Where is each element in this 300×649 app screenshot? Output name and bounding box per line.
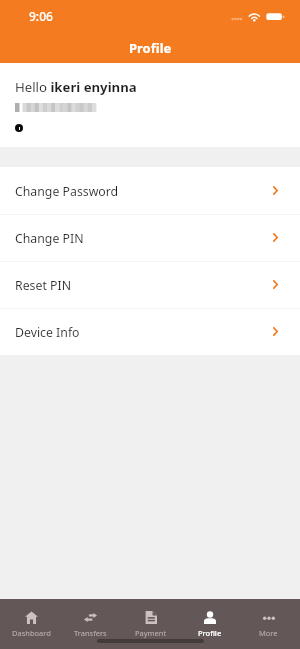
staticText: Profile: [198, 628, 222, 638]
other: More: [263, 611, 275, 624]
button[interactable]: Reset PIN: [0, 261, 300, 308]
button[interactable]: Transfers: [63, 611, 118, 638]
staticText: Transfers: [74, 628, 107, 638]
other: Dashboard: [25, 611, 38, 624]
button[interactable]: Change Password: [0, 167, 300, 214]
staticText: Dashboard: [12, 628, 51, 638]
staticText: Profile: [129, 39, 172, 57]
button[interactable]: Dashboard: [4, 611, 59, 638]
other: Transfers: [84, 611, 97, 624]
staticText: Change Password: [15, 183, 119, 200]
staticText: 9:06: [29, 8, 53, 24]
staticText: Reset PIN: [15, 277, 72, 294]
staticText: Change PIN: [15, 230, 84, 247]
other: Profile: [204, 611, 216, 624]
button[interactable]: Payment: [123, 611, 178, 638]
staticText: Device Info: [15, 324, 80, 341]
staticText: Payment: [135, 628, 167, 638]
button[interactable]: Change PIN: [0, 214, 300, 261]
other: Payment: [145, 611, 157, 624]
staticText: Hello ikeri enyinna: [15, 78, 137, 96]
staticText: More: [259, 628, 278, 638]
button[interactable]: Device Info: [0, 308, 300, 355]
button[interactable]: More: [241, 611, 296, 638]
button[interactable]: Profile: [182, 611, 237, 638]
